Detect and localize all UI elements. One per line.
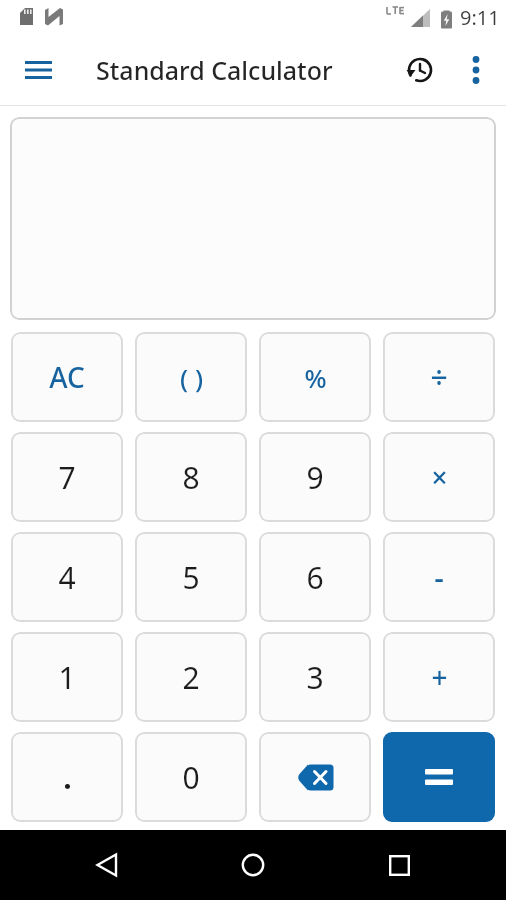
button[interactable] [18, 50, 58, 90]
button[interactable] [57, 830, 157, 900]
button[interactable] [349, 830, 449, 900]
button[interactable]: 4 [11, 532, 123, 622]
button[interactable]: + [383, 632, 495, 722]
button[interactable]: - [383, 532, 495, 622]
staticText: - [434, 557, 444, 598]
button[interactable] [383, 732, 495, 822]
staticText: . [63, 757, 72, 798]
staticText: AC [49, 358, 85, 396]
button[interactable]: % [259, 332, 371, 422]
staticText: 1 [58, 657, 76, 698]
staticText: 4 [58, 557, 76, 598]
staticText: 8 [182, 457, 200, 498]
staticText: Standard Calculator [96, 53, 333, 87]
button[interactable] [259, 732, 371, 822]
button[interactable]: . [11, 732, 123, 822]
staticText: 6 [306, 557, 324, 598]
staticText: × [431, 458, 448, 496]
button[interactable]: 9 [259, 432, 371, 522]
staticText: + [431, 658, 448, 696]
staticText: 9:11 [460, 4, 500, 31]
button[interactable]: 1 [11, 632, 123, 722]
staticText: 2 [182, 657, 200, 698]
button[interactable]: 3 [259, 632, 371, 722]
button[interactable] [203, 830, 303, 900]
button[interactable]: 5 [135, 532, 247, 622]
button[interactable]: ( ) [135, 332, 247, 422]
button[interactable]: 6 [259, 532, 371, 622]
staticText: 3 [306, 657, 324, 698]
staticText: ÷ [430, 357, 448, 398]
button[interactable]: AC [11, 332, 123, 422]
button[interactable]: 0 [135, 732, 247, 822]
staticText: % [304, 360, 327, 395]
button[interactable]: × [383, 432, 495, 522]
button[interactable] [458, 52, 494, 88]
button[interactable] [400, 50, 440, 90]
button[interactable]: 2 [135, 632, 247, 722]
staticText: ( ) [180, 360, 203, 395]
button[interactable]: 8 [135, 432, 247, 522]
staticText: 7 [58, 457, 76, 498]
button[interactable]: ÷ [383, 332, 495, 422]
button[interactable]: 7 [11, 432, 123, 522]
button[interactable] [10, 117, 496, 320]
staticText: 5 [182, 557, 200, 598]
staticText: 0 [182, 757, 200, 798]
staticText: 9 [306, 457, 324, 498]
